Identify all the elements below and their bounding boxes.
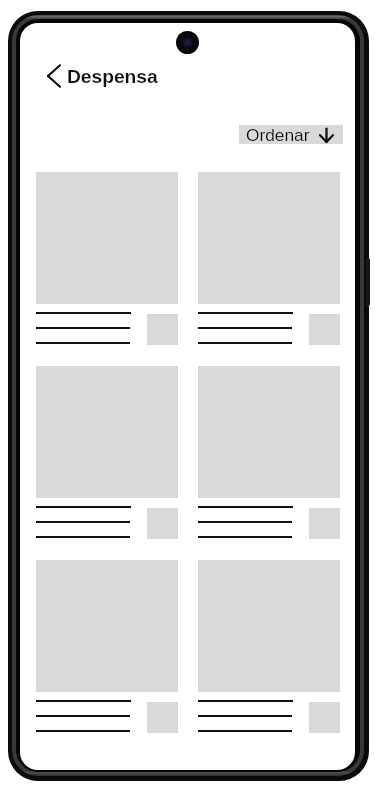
- button[interactable]: [198, 366, 340, 543]
- button[interactable]: [36, 172, 178, 349]
- staticText: Ordenar: [246, 125, 310, 144]
- other: Power button: [366, 258, 370, 306]
- other: Back: [45, 63, 62, 89]
- other: Sort descending: [319, 125, 334, 144]
- button[interactable]: [198, 560, 340, 737]
- button[interactable]: Ordenar: [239, 125, 343, 144]
- button[interactable]: [36, 366, 178, 543]
- button[interactable]: Back: [45, 60, 158, 92]
- staticText: Despensa: [67, 66, 158, 87]
- button[interactable]: [36, 560, 178, 737]
- button[interactable]: [198, 172, 340, 349]
